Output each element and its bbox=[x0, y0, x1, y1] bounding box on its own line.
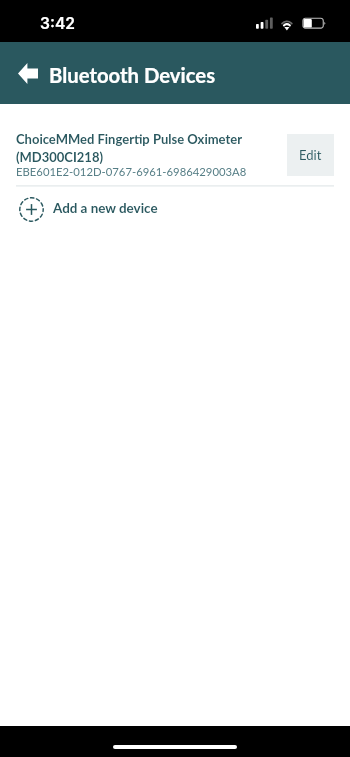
staticText: EBE601E2-012D-0767-6961-6986429003A8 bbox=[16, 165, 247, 179]
staticText: ChoiceMMed Fingertip Pulse Oximeter (MD3… bbox=[16, 131, 266, 165]
staticText: Edit bbox=[299, 147, 322, 163]
button[interactable]: Edit bbox=[287, 134, 334, 176]
staticText: 3:42 bbox=[40, 14, 75, 33]
button[interactable]: ChoiceMMed Fingertip Pulse Oximeter (MD3… bbox=[0, 104, 287, 185]
staticText: Bluetooth Devices bbox=[49, 63, 216, 87]
staticText: Add a new device bbox=[53, 200, 158, 216]
button[interactable]: Add a new device bbox=[0, 193, 350, 225]
button[interactable]: Back bbox=[8, 53, 48, 93]
